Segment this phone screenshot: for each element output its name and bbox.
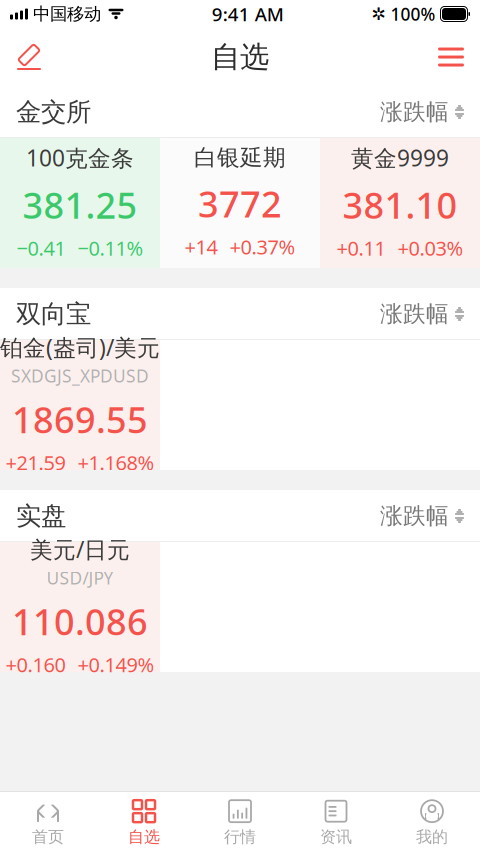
staticText: 金交所 <box>16 96 91 127</box>
staticText: 行情 <box>224 827 256 847</box>
staticText: 381.25 <box>22 181 137 229</box>
button[interactable]: 涨跌幅 <box>380 292 464 336</box>
staticText: 首页 <box>32 827 64 847</box>
staticText: +0.03% <box>397 235 463 261</box>
staticText: 110.086 <box>12 597 148 645</box>
staticText: 自选 <box>128 827 160 847</box>
staticText: 9:41 AM <box>212 2 284 26</box>
button[interactable]: 涨跌幅 <box>380 90 464 134</box>
staticText: 涨跌幅 <box>380 502 449 530</box>
button[interactable]: 白银延期 <box>160 138 320 268</box>
staticText: 381.10 <box>342 181 457 229</box>
staticText: 涨跌幅 <box>380 300 449 328</box>
staticText: +21.59 <box>5 449 65 476</box>
staticText: 1869.55 <box>12 395 148 443</box>
button[interactable]: 100克金条 <box>0 138 160 268</box>
button[interactable]: 编辑 <box>0 33 58 81</box>
button[interactable]: 首页 <box>0 792 96 854</box>
staticText: 涨跌幅 <box>380 98 449 126</box>
staticText: 美元/日元 <box>30 534 130 564</box>
staticText: 我的 <box>416 827 448 847</box>
staticText: −0.41 <box>16 235 65 261</box>
staticText: 3772 <box>198 180 282 227</box>
staticText: SXDGJS_XPDUSD <box>11 364 149 387</box>
staticText: +0.160 <box>5 651 65 678</box>
staticText: 资讯 <box>320 827 352 847</box>
button[interactable]: 资讯 <box>288 792 384 854</box>
button[interactable]: 我的 <box>384 792 480 854</box>
staticText: ✲ <box>371 4 386 24</box>
staticText: +1.168% <box>77 449 154 476</box>
staticText: 黄金9999 <box>351 143 449 173</box>
staticText: 铂金(盎司)/美元 <box>0 332 160 362</box>
staticText: 自选 <box>211 39 269 75</box>
staticText: +0.149% <box>77 651 154 678</box>
staticText: 白银延期 <box>194 144 286 172</box>
staticText: 100克金条 <box>26 143 134 173</box>
staticText: −0.11% <box>77 235 143 261</box>
button[interactable]: 铂金(盎司)/美元 <box>0 340 160 470</box>
staticText: 中国移动 <box>33 3 101 25</box>
staticText: +0.37% <box>229 233 295 260</box>
staticText: 双向宝 <box>16 298 91 329</box>
button[interactable]: 美元/日元 <box>0 542 160 672</box>
button[interactable]: 行情 <box>192 792 288 854</box>
button[interactable]: 自选 <box>96 792 192 854</box>
button[interactable]: 涨跌幅 <box>380 494 464 538</box>
button[interactable]: 黄金9999 <box>320 138 480 268</box>
staticText: 100% <box>390 2 435 25</box>
staticText: USD/JPY <box>46 566 113 589</box>
staticText: +14 <box>184 233 217 260</box>
staticText: +0.11 <box>336 235 385 261</box>
staticText: 实盘 <box>16 500 66 531</box>
button[interactable]: 菜单 <box>422 34 480 80</box>
